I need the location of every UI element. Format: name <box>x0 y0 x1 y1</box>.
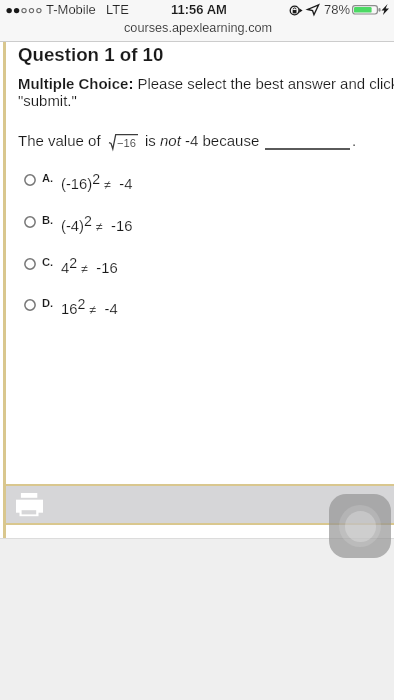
staticText: 162 ≠ -4 <box>61 296 118 317</box>
button[interactable]: AssistiveTouch <box>329 494 391 558</box>
staticText: Multiple Choice: Please select the best … <box>18 75 394 109</box>
staticText: −16 <box>117 137 136 150</box>
staticText: is not -4 because <box>145 132 260 149</box>
staticText: 11:56 AM <box>171 2 227 17</box>
staticText: The value of <box>18 132 101 149</box>
staticText: D. <box>42 297 54 310</box>
staticText: LTE <box>106 2 129 17</box>
staticText: B. <box>42 214 54 227</box>
button[interactable]: D. <box>20 291 200 323</box>
button[interactable]: C. <box>20 250 200 282</box>
staticText: C. <box>42 256 54 269</box>
staticText: A. <box>42 172 54 185</box>
button[interactable]: B. <box>20 208 200 240</box>
staticText: (-16)2 ≠ -4 <box>61 171 133 192</box>
staticText: 42 ≠ -16 <box>61 255 118 276</box>
staticText: Question 1 of 10 <box>18 44 164 65</box>
staticText: . <box>352 132 357 149</box>
staticText: courses.apexlearning.com <box>124 21 273 35</box>
button[interactable]: A. <box>20 166 200 198</box>
button[interactable]: Print <box>10 489 48 521</box>
staticText: (-4)2 ≠ -16 <box>61 213 133 234</box>
staticText: 78% <box>324 2 351 17</box>
staticText: T-Mobile <box>46 2 96 17</box>
